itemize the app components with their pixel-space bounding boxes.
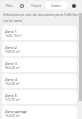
button[interactable]: Plus: [3, 2, 15, 9]
staticText: 154.50 m²: [5, 114, 20, 118]
staticText: Zone 1: [5, 29, 17, 34]
staticText: 176.70 m²: [5, 98, 20, 102]
staticText: Traces: [31, 3, 42, 8]
staticText: Sélectionnez une de vos zones pour l'aff…: [3, 12, 80, 23]
staticText: Zone garage: [5, 109, 28, 114]
staticText: 198.50 m²: [5, 50, 20, 54]
button[interactable]: Carte: [16, 1, 28, 10]
button[interactable]: Zone 2: [2, 42, 77, 56]
button[interactable]: Zone garage: [2, 106, 77, 119]
staticText: Zone 4: [5, 77, 17, 82]
staticText: Zones: [51, 3, 61, 8]
staticText: 154.38 m²: [5, 82, 20, 86]
button[interactable]: Zone 3: [2, 58, 77, 72]
staticText: Zone 5: [5, 93, 17, 98]
staticText: Zone 2: [5, 45, 17, 50]
staticText: 960.38 m²: [5, 66, 20, 70]
button[interactable]: Zone 1: [2, 26, 77, 40]
button[interactable]: Zone 5: [2, 90, 77, 104]
button[interactable]: Menu: [68, 1, 80, 10]
staticText: Zone 3: [5, 61, 17, 66]
button[interactable]: Zone 4: [2, 74, 77, 88]
staticText: 1455.10 m²: [5, 34, 22, 38]
button[interactable]: Zones: [45, 2, 67, 9]
button[interactable]: Traces: [29, 2, 43, 9]
staticText: Plus: [6, 3, 13, 8]
